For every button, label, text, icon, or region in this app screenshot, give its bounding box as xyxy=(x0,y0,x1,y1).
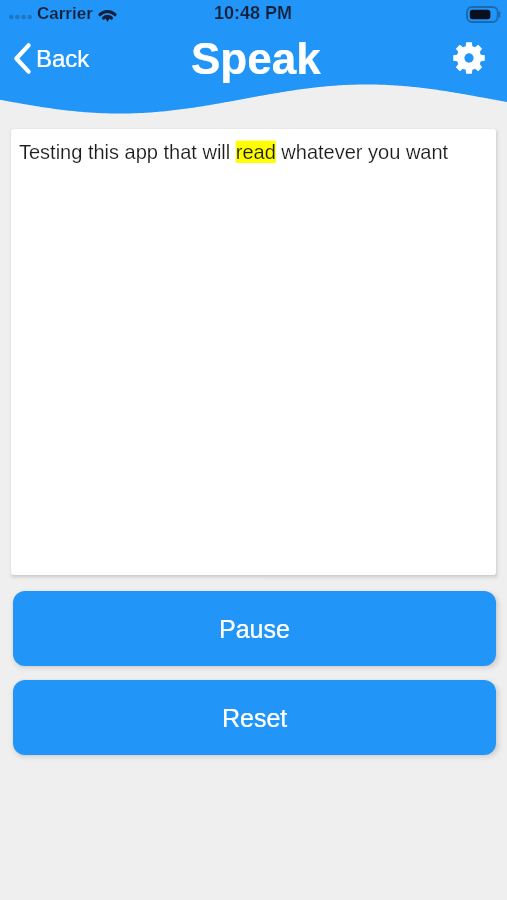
button[interactable]: Reset xyxy=(13,680,496,755)
staticText: Reset xyxy=(222,704,288,732)
button[interactable]: Pause xyxy=(13,591,496,666)
button[interactable]: Testing this app that will read whatever… xyxy=(11,129,496,575)
staticText: Testing this app that will read whatever… xyxy=(19,141,449,163)
staticText: Pause xyxy=(219,615,290,643)
staticText: Back xyxy=(36,45,90,72)
staticText: Carrier xyxy=(37,4,93,23)
button[interactable]: Settings xyxy=(442,31,496,85)
staticText: Speak xyxy=(191,34,321,83)
staticText: 10:48 PM xyxy=(214,3,293,23)
button[interactable]: Back xyxy=(0,35,104,82)
